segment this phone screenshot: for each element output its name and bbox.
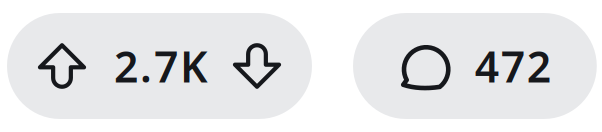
staticText: 472 [475, 38, 551, 94]
button[interactable]: Downvote [208, 13, 312, 119]
staticText: 2.7K [114, 38, 208, 94]
button[interactable]: 472 [353, 13, 597, 119]
button[interactable]: Upvote [7, 13, 114, 119]
